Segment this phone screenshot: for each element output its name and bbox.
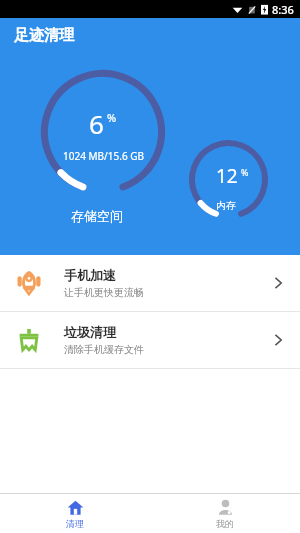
other: 清理 xyxy=(67,499,84,516)
staticText: 8:36 xyxy=(272,2,294,17)
other: 我的 xyxy=(217,499,234,516)
staticText: 内存 xyxy=(216,199,236,212)
staticText: 清除手机缓存文件 xyxy=(64,343,144,356)
staticText: % xyxy=(107,110,117,125)
staticText: 清理 xyxy=(66,518,84,529)
staticText: 1024 MB/15.6 GB xyxy=(63,149,144,163)
staticText: 我的 xyxy=(216,518,234,529)
button[interactable]: 垃圾清理 xyxy=(0,312,300,368)
staticText: 垃圾清理 xyxy=(64,324,116,340)
staticText: % xyxy=(241,166,249,178)
button[interactable]: 我的 xyxy=(150,494,300,533)
staticText: 12 xyxy=(216,163,238,189)
staticText: 让手机更快更流畅 xyxy=(64,286,144,299)
staticText: 存储空间 xyxy=(71,208,123,224)
button[interactable]: 手机加速 xyxy=(0,255,300,311)
staticText: 6 xyxy=(89,106,104,141)
staticText: 足迹清理 xyxy=(14,26,74,45)
button[interactable]: 清理 xyxy=(0,494,150,533)
staticText: 手机加速 xyxy=(64,267,116,283)
